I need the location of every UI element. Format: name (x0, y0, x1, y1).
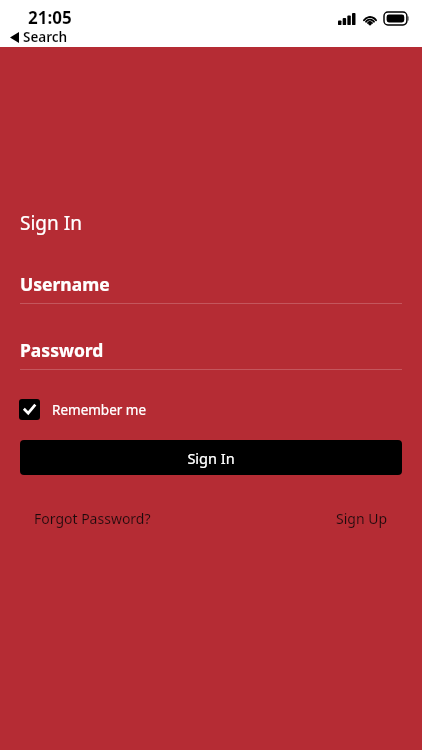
staticText: Remember me (52, 401, 147, 419)
staticText: Username (20, 272, 110, 296)
staticText: Search (23, 28, 68, 46)
staticText: Sign Up (336, 509, 388, 528)
button[interactable]: Sign In (20, 440, 402, 475)
button[interactable]: Password (0, 338, 422, 370)
staticText: Forgot Password? (34, 509, 151, 528)
button[interactable]: Remember me (19, 395, 155, 424)
button[interactable]: Forgot Password? (30, 505, 155, 532)
staticText: Sign In (20, 210, 82, 236)
button[interactable]: Search (8, 28, 70, 46)
staticText: Sign In (187, 448, 235, 468)
staticText: 21:05 (28, 6, 72, 29)
staticText: Password (20, 338, 104, 362)
button[interactable]: Sign Up (332, 505, 392, 532)
button[interactable]: Username (0, 272, 422, 304)
